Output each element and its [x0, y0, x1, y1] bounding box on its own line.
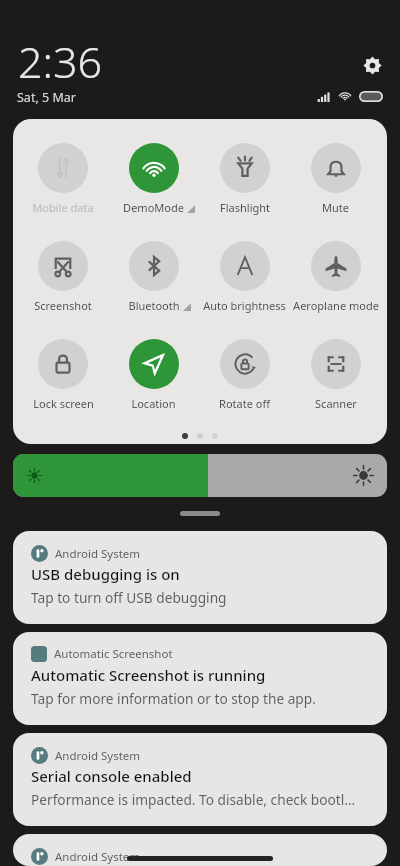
- staticText: Bluetooth: [128, 298, 180, 313]
- button[interactable]: [13, 454, 387, 497]
- button[interactable]: Automatic Screenshot: [13, 632, 387, 725]
- staticText: Automatic Screenshot is running: [31, 665, 266, 685]
- staticText: Sat, 5 Mar: [17, 89, 76, 106]
- staticText: Automatic Screenshot: [54, 646, 173, 662]
- staticText: Mute: [322, 200, 349, 215]
- button[interactable]: Lock screen: [18, 339, 108, 411]
- button[interactable]: Location: [108, 339, 199, 411]
- button[interactable]: Flashlight: [199, 143, 290, 215]
- staticText: Location: [131, 396, 176, 411]
- staticText: Scanner: [315, 396, 357, 411]
- staticText: Rotate off: [219, 396, 270, 411]
- button[interactable]: Rotate off: [199, 339, 290, 411]
- staticText: Aeroplane mode: [293, 298, 379, 313]
- staticText: Performance is impacted. To disable, che…: [31, 790, 356, 809]
- button[interactable]: Auto brightness: [199, 241, 290, 313]
- button[interactable]: Android System: [13, 733, 387, 826]
- staticText: Android System: [55, 546, 141, 562]
- staticText: Flashlight: [220, 200, 270, 215]
- button[interactable]: Aeroplane mode: [290, 241, 381, 313]
- staticText: Screenshot: [34, 298, 92, 313]
- button[interactable]: Screenshot: [18, 241, 108, 313]
- staticText: Android System: [55, 849, 141, 865]
- staticText: USB debugging is on: [31, 564, 180, 584]
- staticText: Serial console enabled: [31, 766, 192, 786]
- button[interactable]: Bluetooth: [108, 241, 199, 313]
- button[interactable]: Android System: [13, 834, 387, 866]
- staticText: Auto brightness: [203, 298, 286, 313]
- button[interactable]: Mute: [290, 143, 381, 215]
- staticText: Lock screen: [33, 396, 94, 411]
- staticText: Tap for more information or to stop the …: [31, 689, 316, 708]
- staticText: Tap to turn off USB debugging: [31, 588, 227, 607]
- button[interactable]: Android System: [13, 531, 387, 624]
- staticText: DemoMode: [123, 200, 184, 215]
- button[interactable]: DemoMode: [108, 143, 199, 215]
- staticText: Android System: [55, 748, 141, 764]
- button[interactable]: Mobile data: [18, 143, 108, 215]
- staticText: Mobile data: [32, 200, 94, 215]
- staticText: 2:36: [18, 32, 103, 91]
- button[interactable]: Settings: [359, 52, 385, 78]
- button[interactable]: Scanner: [290, 339, 381, 411]
